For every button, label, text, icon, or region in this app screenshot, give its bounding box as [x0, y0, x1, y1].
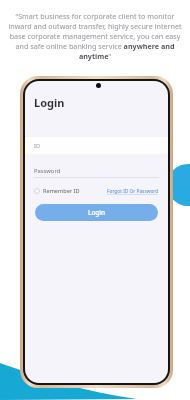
button[interactable]: Password [25, 164, 168, 178]
staticText: Login [34, 95, 65, 110]
staticText: Password [34, 167, 61, 175]
staticText: Forgot ID Or Password [107, 188, 159, 195]
button[interactable]: Remember ID [34, 187, 80, 195]
staticText: Login [88, 208, 106, 217]
button[interactable]: Login [35, 204, 158, 221]
staticText: Remember ID [43, 187, 80, 195]
staticText: ID [34, 142, 40, 150]
staticText: “Smart business for corporate client to … [8, 11, 182, 61]
button[interactable]: ID [25, 137, 168, 154]
button[interactable]: Forgot ID Or Password [107, 188, 159, 195]
